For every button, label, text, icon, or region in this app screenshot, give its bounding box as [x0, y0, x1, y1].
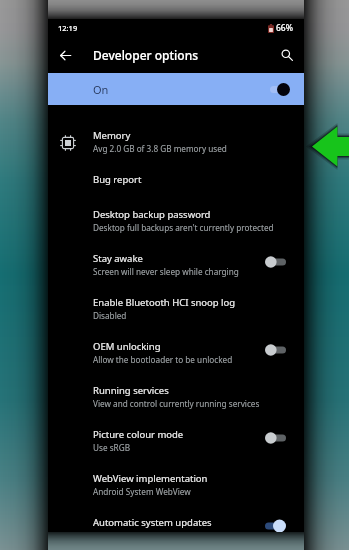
staticText: Android System WebView [93, 486, 191, 497]
staticText: Enable Bluetooth HCI snoop log [93, 296, 236, 309]
button[interactable]: Picture colour mode [48, 416, 304, 460]
button[interactable]: Running services [48, 372, 304, 416]
staticText: Avg 2.0 GB of 3.8 GB memory used [93, 143, 227, 154]
button[interactable]: Stay awake [48, 240, 304, 284]
staticText: Disabled [93, 310, 127, 321]
staticText: Desktop backup password [93, 208, 211, 221]
staticText: 12:19 [58, 23, 78, 33]
button[interactable]: Back [53, 43, 77, 67]
staticText: Allow the bootloader to be unlocked [93, 354, 233, 365]
staticText: On [93, 82, 109, 97]
staticText: Automatic system updates [93, 516, 212, 529]
staticText: Screen will never sleep while charging [93, 266, 239, 277]
staticText: Running services [93, 384, 169, 397]
staticText: Stay awake [93, 252, 143, 265]
staticText: Picture colour mode [93, 428, 184, 441]
button[interactable]: OEM unlocking [48, 328, 304, 372]
staticText: Use sRGB [93, 442, 130, 453]
staticText: Bug report [93, 173, 142, 186]
staticText: 66% [276, 22, 293, 34]
button[interactable]: On [48, 73, 304, 105]
staticText: Memory [93, 129, 131, 142]
button[interactable]: Bug report [48, 161, 304, 196]
button[interactable]: Search [275, 43, 298, 66]
staticText: WebView implementation [93, 472, 208, 485]
staticText: OEM unlocking [93, 340, 161, 353]
button[interactable]: Desktop backup password [48, 196, 304, 240]
staticText: Desktop full backups aren't currently pr… [93, 222, 274, 233]
staticText: View and control currently running servi… [93, 398, 260, 409]
button[interactable]: Automatic system updates [48, 504, 304, 532]
button[interactable]: Memory [48, 117, 304, 161]
button[interactable]: WebView implementation [48, 460, 304, 504]
button[interactable]: Enable Bluetooth HCI snoop log [48, 284, 304, 328]
staticText: Developer options [93, 47, 199, 63]
